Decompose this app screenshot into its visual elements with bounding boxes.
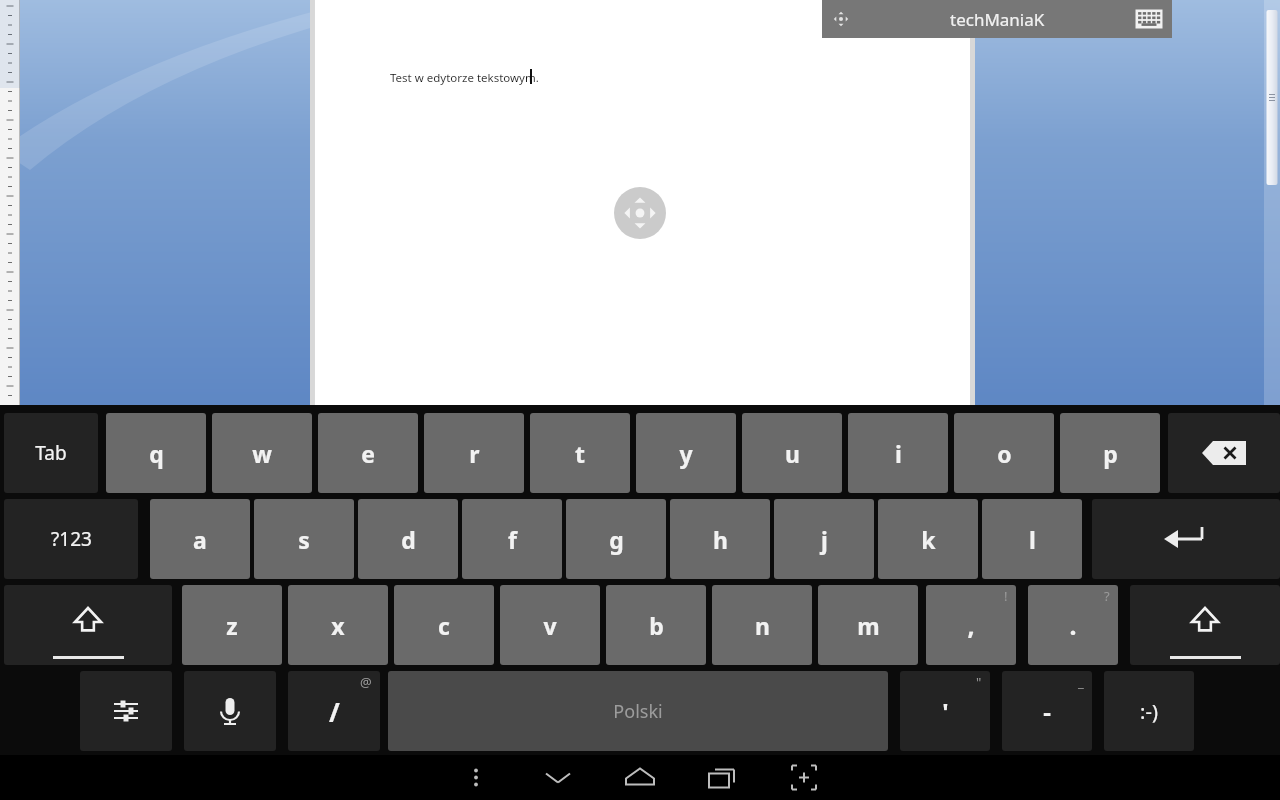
staticText: t — [575, 438, 585, 469]
staticText: - — [1043, 695, 1051, 728]
staticText: ! — [1004, 587, 1008, 605]
button[interactable]: Shift — [1130, 585, 1280, 665]
button[interactable]: Keyboard — [1132, 4, 1166, 34]
staticText: :-) — [1140, 698, 1158, 725]
button[interactable]: e — [318, 413, 418, 493]
staticText: _ — [1078, 673, 1084, 691]
button[interactable]: Move window — [822, 0, 860, 38]
staticText: s — [298, 524, 310, 555]
staticText: o — [997, 438, 1012, 469]
staticText: Polski — [613, 699, 663, 724]
button[interactable]: x — [288, 585, 388, 665]
staticText: i — [895, 438, 902, 469]
button[interactable]: . — [1028, 585, 1118, 665]
button[interactable]: Recent apps — [695, 755, 749, 800]
staticText: n — [755, 610, 770, 641]
button[interactable]: v — [500, 585, 600, 665]
button[interactable]: r — [424, 413, 524, 493]
staticText: ?123 — [51, 526, 92, 552]
button[interactable]: z — [182, 585, 282, 665]
button[interactable]: Keyboard settings — [80, 671, 172, 751]
staticText: y — [679, 438, 693, 469]
button[interactable]: Backspace — [1168, 413, 1280, 493]
button[interactable]: Hide keyboard — [531, 755, 585, 800]
button[interactable]: Shift — [4, 585, 172, 665]
button[interactable]: s — [254, 499, 354, 579]
staticText: v — [543, 610, 557, 641]
staticText: k — [921, 524, 936, 555]
button[interactable]: More options — [449, 755, 503, 800]
staticText: z — [226, 610, 238, 641]
button[interactable]: , — [926, 585, 1016, 665]
staticText: d — [401, 524, 416, 555]
staticText: g — [609, 524, 624, 555]
button[interactable]: ?123 — [4, 499, 138, 579]
button[interactable]: Polski — [388, 671, 888, 751]
staticText: e — [361, 438, 375, 469]
staticText: m — [857, 610, 880, 641]
staticText: a — [193, 524, 207, 555]
staticText: x — [331, 610, 345, 641]
staticText: , — [967, 608, 975, 642]
button[interactable]: p — [1060, 413, 1160, 493]
staticText: @ — [360, 673, 372, 691]
button[interactable]: Home — [613, 755, 667, 800]
button[interactable]: b — [606, 585, 706, 665]
button[interactable]: Voice input — [184, 671, 276, 751]
button[interactable]: q — [106, 413, 206, 493]
staticText: . — [1069, 608, 1077, 642]
staticText: r — [469, 438, 480, 469]
button[interactable]: Enter — [1092, 499, 1280, 579]
staticText: Tab — [35, 440, 67, 466]
staticText: l — [1029, 524, 1036, 555]
staticText: j — [821, 524, 828, 555]
button[interactable]: l — [982, 499, 1082, 579]
button[interactable]: w — [212, 413, 312, 493]
staticText: p — [1103, 438, 1118, 469]
staticText: techManiaK — [950, 8, 1045, 31]
staticText: ' — [942, 695, 949, 728]
button[interactable]: o — [954, 413, 1054, 493]
button[interactable]: h — [670, 499, 770, 579]
button[interactable]: :-) — [1104, 671, 1194, 751]
staticText: f — [508, 524, 517, 555]
staticText: Test w edytorze tekstowym. — [390, 70, 539, 86]
button[interactable]: f — [462, 499, 562, 579]
button[interactable]: Screenshot — [777, 755, 831, 800]
button[interactable]: j — [774, 499, 874, 579]
button[interactable]: k — [878, 499, 978, 579]
button[interactable]: i — [848, 413, 948, 493]
staticText: / — [329, 694, 340, 729]
button[interactable]: / — [288, 671, 380, 751]
staticText: h — [713, 524, 728, 555]
button[interactable]: g — [566, 499, 666, 579]
staticText: u — [785, 438, 800, 469]
button[interactable]: u — [742, 413, 842, 493]
button[interactable]: n — [712, 585, 812, 665]
button[interactable]: - — [1002, 671, 1092, 751]
staticText: q — [149, 438, 164, 469]
button[interactable]: d — [358, 499, 458, 579]
staticText: b — [649, 610, 664, 641]
button[interactable]: t — [530, 413, 630, 493]
staticText: ? — [1104, 587, 1110, 605]
staticText: c — [438, 610, 450, 641]
button[interactable]: y — [636, 413, 736, 493]
button[interactable]: Tab — [4, 413, 98, 493]
button[interactable]: m — [818, 585, 918, 665]
button[interactable]: c — [394, 585, 494, 665]
staticText: w — [252, 438, 272, 469]
button[interactable]: ' — [900, 671, 990, 751]
staticText: " — [976, 673, 982, 691]
button[interactable]: a — [150, 499, 250, 579]
button[interactable]: Move cursor — [613, 186, 667, 240]
